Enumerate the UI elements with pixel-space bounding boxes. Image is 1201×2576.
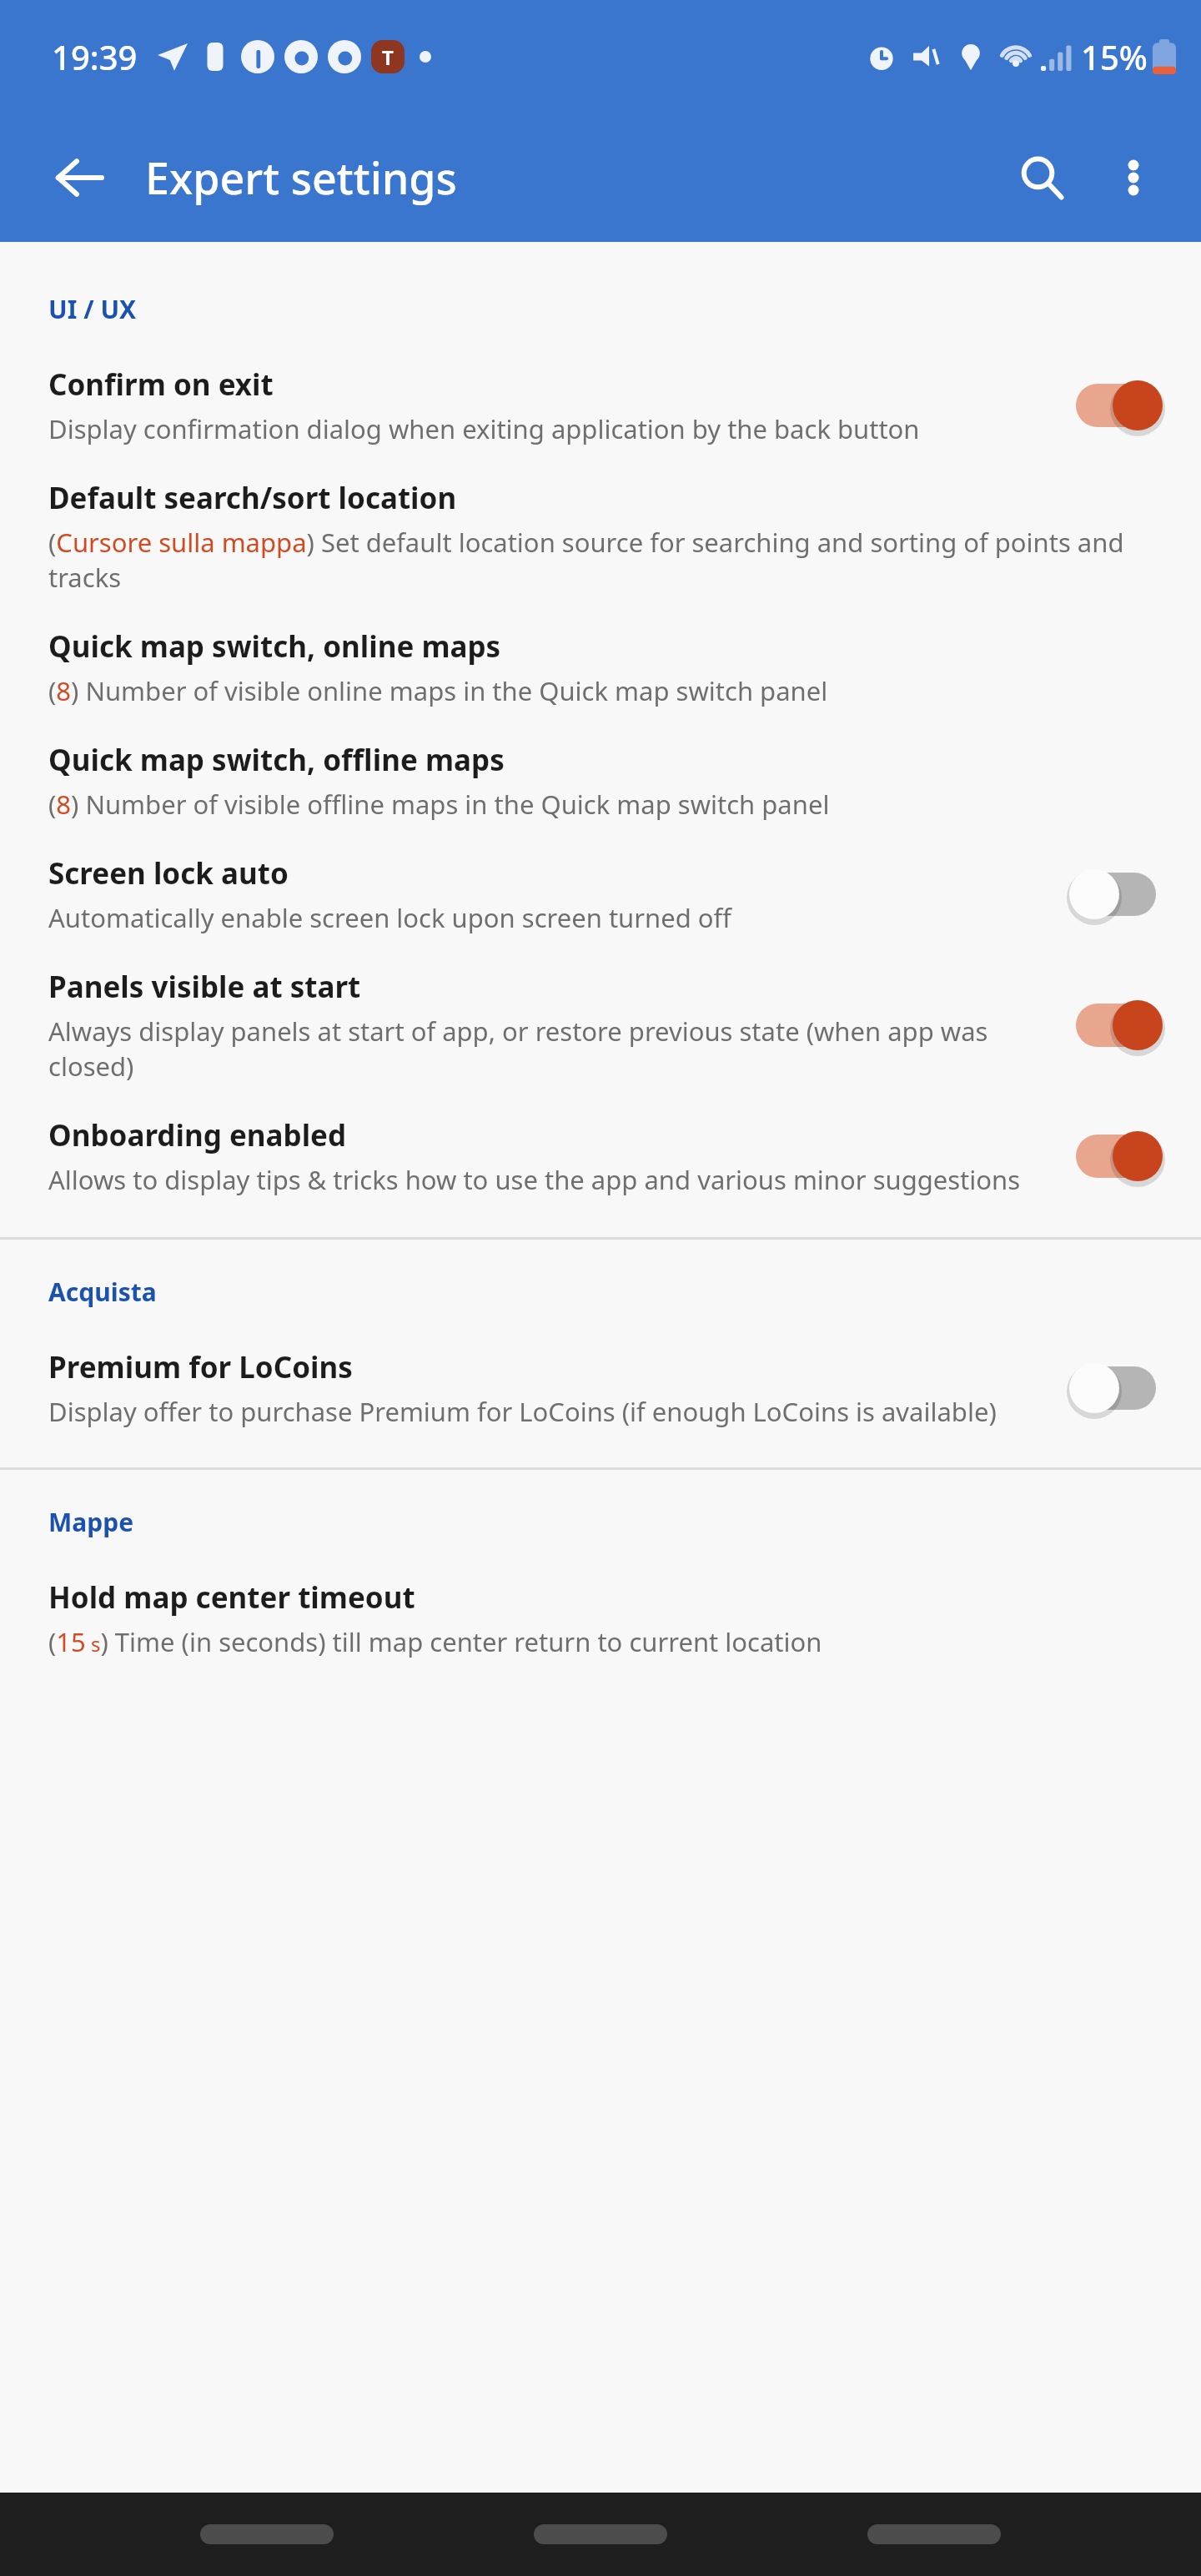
button[interactable]: Search bbox=[996, 132, 1088, 224]
staticText: Default search/sort location bbox=[48, 478, 457, 518]
staticText: Allows to display tips & tricks how to u… bbox=[48, 1162, 1021, 1197]
staticText: Expert settings bbox=[145, 148, 457, 207]
staticText: (8) Number of visible online maps in the… bbox=[48, 673, 828, 708]
button[interactable]: Toggle on bbox=[1064, 992, 1168, 1059]
button[interactable]: Quick map switch, online maps bbox=[0, 613, 1201, 727]
button[interactable]: Toggle on bbox=[1064, 372, 1168, 439]
button[interactable]: Panels visible at start bbox=[0, 953, 1201, 1102]
button[interactable]: Onboarding enabled bbox=[0, 1102, 1201, 1215]
staticText: T bbox=[382, 43, 394, 71]
staticText: Display confirmation dialog when exiting… bbox=[48, 411, 920, 446]
staticText: (15 s) Time (in seconds) till map center… bbox=[48, 1624, 822, 1659]
button[interactable]: Navigation button bbox=[534, 2524, 667, 2544]
staticText: (Cursore sulla mappa) Set default locati… bbox=[48, 525, 1168, 595]
button[interactable]: Default search/sort location bbox=[0, 465, 1201, 613]
staticText: Premium for LoCoins bbox=[48, 1347, 353, 1387]
staticText: (8) Number of visible offline maps in th… bbox=[48, 787, 830, 822]
staticText: 19:39 bbox=[52, 34, 138, 79]
staticText: Screen lock auto bbox=[48, 853, 289, 893]
button[interactable]: Toggle on bbox=[1064, 1123, 1168, 1190]
staticText: Display offer to purchase Premium for Lo… bbox=[48, 1394, 997, 1429]
button[interactable]: Back bbox=[33, 132, 125, 224]
staticText: Quick map switch, offline maps bbox=[48, 740, 505, 780]
button[interactable]: Navigation button bbox=[200, 2524, 334, 2544]
button[interactable]: Confirm on exit bbox=[0, 351, 1201, 465]
staticText: Panels visible at start bbox=[48, 967, 361, 1007]
button[interactable]: Toggle off bbox=[1064, 861, 1168, 928]
button[interactable]: Hold map center timeout bbox=[0, 1564, 1201, 1678]
staticText: UI / UX bbox=[48, 292, 137, 326]
staticText: Always display panels at start of app, o… bbox=[48, 1014, 1044, 1084]
button[interactable]: Toggle off bbox=[1064, 1355, 1168, 1421]
button[interactable]: Navigation button bbox=[867, 2524, 1001, 2544]
staticText: Confirm on exit bbox=[48, 365, 274, 405]
staticText: Automatically enable screen lock upon sc… bbox=[48, 900, 731, 935]
button[interactable]: More options bbox=[1088, 132, 1179, 224]
staticText: 15% bbox=[1081, 34, 1148, 79]
button[interactable]: Premium for LoCoins bbox=[0, 1334, 1201, 1447]
button[interactable]: Quick map switch, offline maps bbox=[0, 727, 1201, 840]
staticText: Mappe bbox=[48, 1505, 134, 1539]
button[interactable]: Screen lock auto bbox=[0, 840, 1201, 953]
staticText: Acquista bbox=[48, 1275, 157, 1309]
staticText: Quick map switch, online maps bbox=[48, 626, 501, 667]
staticText: Hold map center timeout bbox=[48, 1577, 415, 1618]
staticText: Onboarding enabled bbox=[48, 1115, 347, 1155]
